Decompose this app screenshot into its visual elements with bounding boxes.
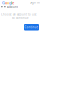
staticText: o — [5, 0, 7, 5]
staticText: Continue — [24, 25, 38, 29]
button[interactable]: Continue — [24, 24, 39, 30]
staticText: o — [7, 0, 9, 5]
staticText: Sign in — [30, 1, 40, 4]
staticText: to continue — [12, 16, 29, 20]
staticText: Choose an account to use — [1, 13, 37, 16]
staticText: G — [2, 0, 5, 5]
button[interactable]: Sign in — [30, 1, 40, 4]
staticText: g — [9, 0, 11, 5]
staticText: l — [11, 0, 12, 5]
staticText: Account — [7, 5, 18, 9]
staticText: e — [12, 0, 14, 5]
